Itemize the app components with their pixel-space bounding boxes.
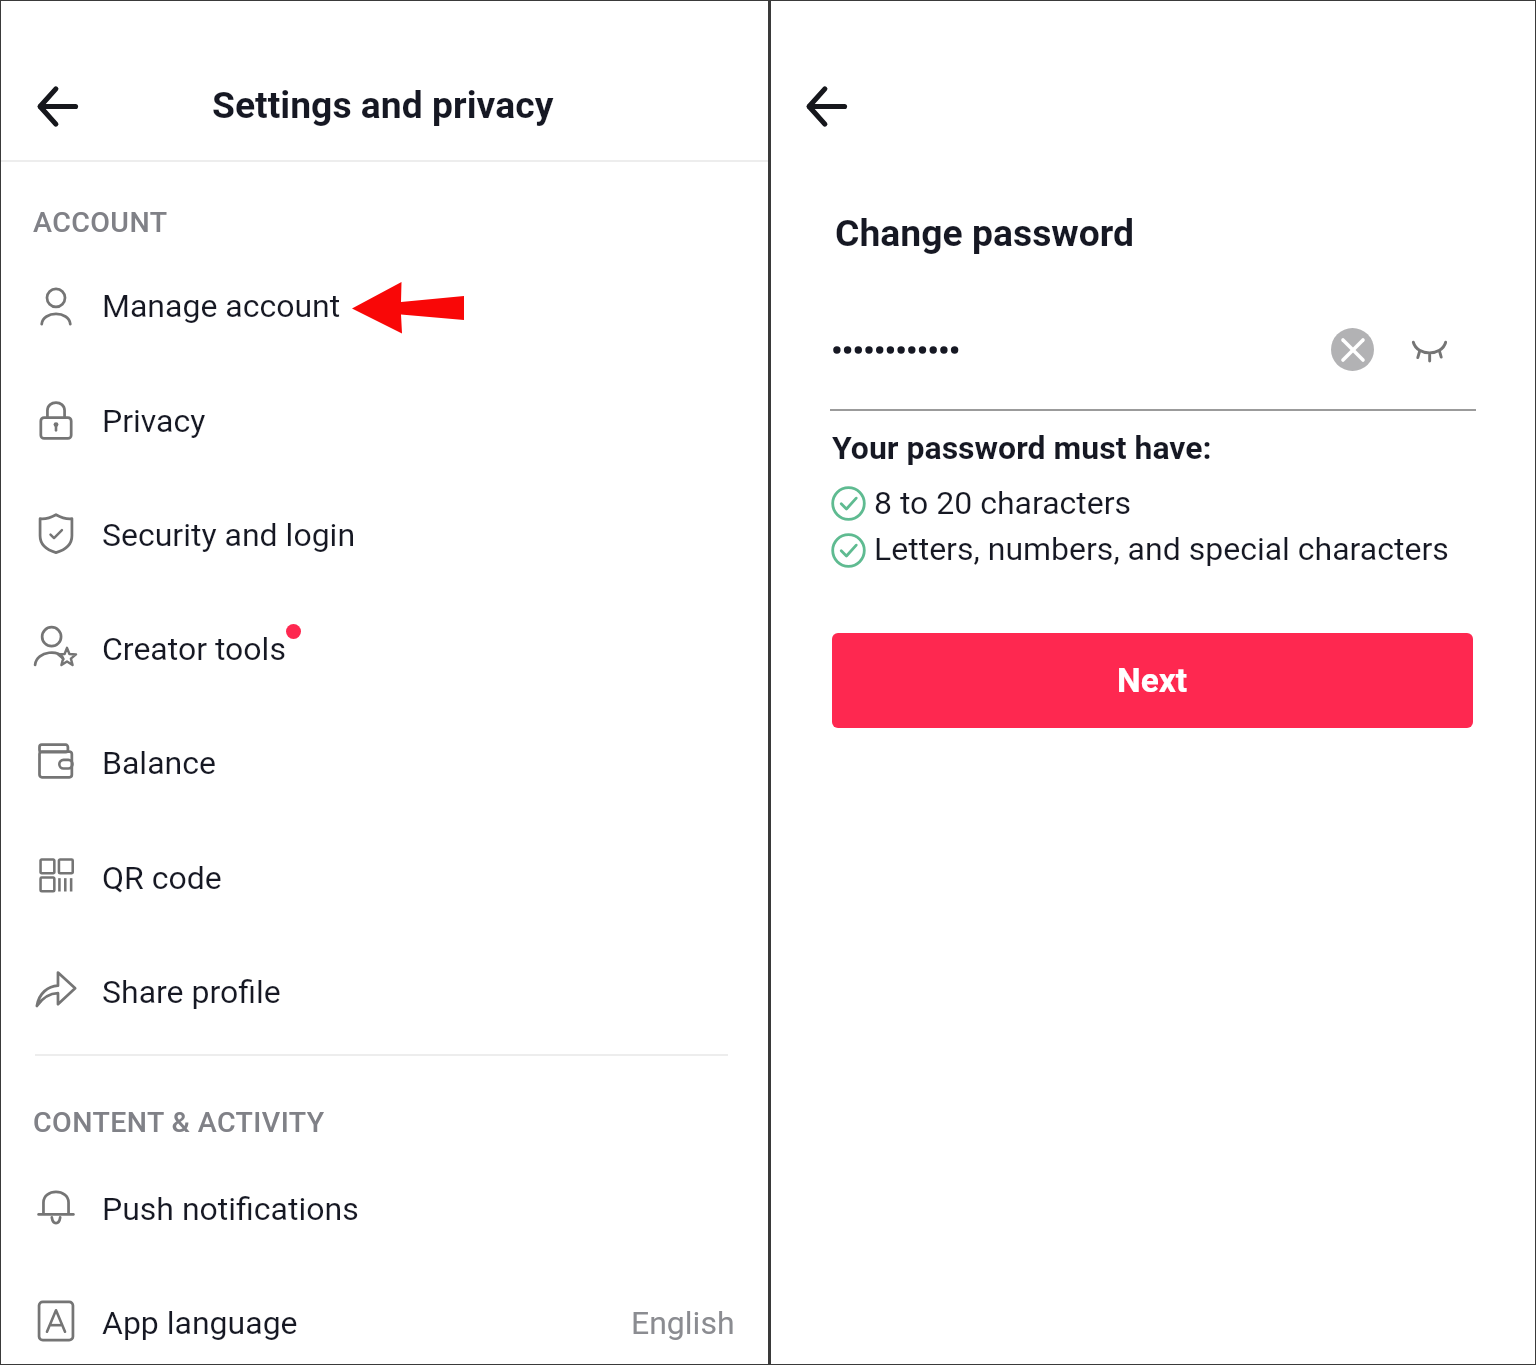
staticText: App language	[102, 1304, 298, 1342]
staticText: CONTENT & ACTIVITY	[33, 1106, 325, 1139]
button[interactable]: Creator tools	[0, 581, 768, 695]
staticText: Change password	[835, 211, 1135, 255]
button[interactable]: Privacy	[0, 353, 768, 467]
button[interactable]: Balance	[0, 695, 768, 809]
button[interactable]: Back	[798, 78, 855, 135]
staticText: Settings and privacy	[212, 83, 554, 127]
staticText: Push notifications	[102, 1190, 359, 1228]
button[interactable]: Next	[832, 633, 1473, 728]
button[interactable]: Security and login	[0, 467, 768, 581]
staticText: Creator tools	[102, 630, 286, 668]
button[interactable]: Back	[29, 78, 86, 135]
staticText: Next	[1117, 661, 1188, 700]
button[interactable]: App language	[0, 1255, 768, 1365]
staticText: Security and login	[102, 516, 356, 554]
staticText: ACCOUNT	[33, 206, 168, 239]
staticText: 8 to 20 characters	[874, 484, 1132, 522]
staticText: Share profile	[102, 973, 281, 1011]
button[interactable]: Push notifications	[0, 1141, 768, 1255]
staticText: Balance	[102, 744, 216, 782]
button[interactable]: Share profile	[0, 924, 768, 1038]
staticText: English	[631, 1304, 735, 1342]
staticText: QR code	[102, 859, 222, 897]
staticText: Your password must have:	[832, 429, 1212, 467]
staticText: Privacy	[102, 402, 206, 440]
button[interactable]: Show password	[1394, 325, 1448, 373]
staticText: Letters, numbers, and special characters	[874, 530, 1449, 568]
button[interactable]: Clear text	[1331, 328, 1374, 371]
button[interactable]: Manage account	[0, 238, 768, 352]
button[interactable]: QR code	[0, 810, 768, 924]
staticText: Manage account	[102, 287, 341, 325]
